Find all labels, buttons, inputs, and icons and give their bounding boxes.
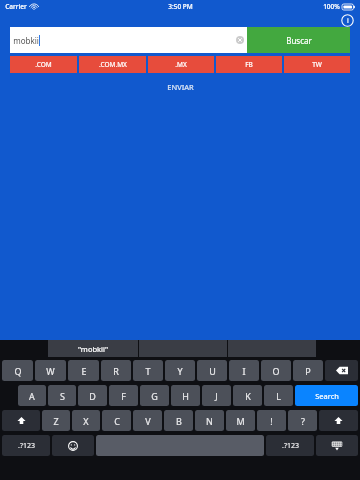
staticText: 100% — [323, 2, 340, 11]
button[interactable]: K — [233, 385, 262, 406]
button[interactable]: Info — [341, 14, 354, 27]
button[interactable]: X — [72, 410, 100, 431]
staticText: T — [145, 365, 151, 377]
staticText: R — [113, 365, 119, 377]
staticText: S — [60, 390, 65, 402]
staticText: Z — [53, 415, 59, 427]
button[interactable]: C — [102, 410, 131, 431]
staticText: E — [81, 365, 87, 377]
staticText: K — [245, 390, 251, 402]
button[interactable]: .?123 — [2, 435, 50, 456]
button[interactable]: L — [264, 385, 293, 406]
button[interactable]: S — [48, 385, 76, 406]
button[interactable]: Buscar — [247, 27, 350, 53]
staticText: I — [242, 365, 246, 377]
staticText: L — [276, 390, 281, 402]
staticText: Y — [177, 365, 183, 377]
staticText: mobkii — [13, 35, 39, 46]
button[interactable]: mobkii — [10, 27, 247, 53]
staticText: F — [121, 390, 126, 402]
staticText: H — [182, 390, 189, 402]
button[interactable]: I — [229, 360, 259, 381]
staticText: U — [209, 365, 216, 377]
button[interactable]: J — [202, 385, 231, 406]
button[interactable]: V — [133, 410, 162, 431]
button[interactable]: M — [226, 410, 255, 431]
button[interactable]: U — [197, 360, 227, 381]
staticText: M — [236, 415, 245, 427]
button[interactable]: Emoji — [52, 435, 94, 456]
staticText: .COM — [35, 60, 52, 69]
button[interactable]: G — [140, 385, 169, 406]
button[interactable]: A — [18, 385, 46, 406]
staticText: N — [206, 415, 213, 427]
staticText: V — [145, 415, 151, 427]
staticText: i — [347, 16, 349, 26]
staticText: W — [46, 365, 55, 377]
button[interactable]: W — [35, 360, 66, 381]
staticText: 3:50 PM — [168, 2, 193, 11]
button[interactable]: Shift — [2, 410, 40, 431]
staticText: TW — [312, 60, 322, 69]
staticText: Buscar — [286, 35, 312, 46]
button[interactable]: .?123 — [266, 435, 314, 456]
button[interactable]: Clear text — [236, 36, 244, 44]
button[interactable]: O — [261, 360, 291, 381]
button[interactable]: .COM — [10, 56, 77, 73]
staticText: J — [215, 390, 218, 402]
button[interactable]: Backspace — [325, 360, 358, 381]
staticText: .?123 — [282, 441, 299, 451]
staticText: Search — [315, 391, 339, 401]
button[interactable]: N — [195, 410, 224, 431]
button[interactable]: E — [68, 360, 99, 381]
staticText: FB — [245, 60, 253, 69]
button[interactable]: Shift — [319, 410, 358, 431]
staticText: G — [151, 390, 158, 402]
button[interactable]: .COM.MX — [79, 56, 146, 73]
button[interactable]: Y — [165, 360, 195, 381]
staticText: C — [114, 415, 120, 427]
button[interactable]: ! — [257, 410, 286, 431]
staticText: .?123 — [18, 441, 35, 451]
staticText: X — [83, 415, 89, 427]
button[interactable]: Q — [2, 360, 33, 381]
staticText: P — [305, 365, 311, 377]
staticText: Carrier — [5, 2, 27, 11]
staticText: O — [272, 365, 280, 377]
button[interactable]: T — [133, 360, 163, 381]
button[interactable]: B — [164, 410, 193, 431]
button[interactable]: R — [101, 360, 131, 381]
staticText: ! — [270, 415, 273, 427]
staticText: Q — [14, 365, 22, 377]
button[interactable]: D — [78, 385, 107, 406]
button[interactable]: F — [109, 385, 138, 406]
button[interactable]: Hide keyboard — [316, 435, 358, 456]
staticText: .COM.MX — [99, 60, 127, 69]
staticText: "mobkii" — [78, 344, 108, 354]
button[interactable]: FB — [216, 56, 282, 73]
staticText: .MX — [175, 60, 187, 69]
button[interactable]: Search — [295, 385, 358, 406]
button[interactable]: Z — [42, 410, 70, 431]
button[interactable]: H — [171, 385, 200, 406]
button[interactable]: "mobkii" — [48, 340, 138, 357]
button[interactable]: P — [293, 360, 323, 381]
staticText: ? — [301, 415, 305, 427]
staticText: ENVIAR — [167, 82, 194, 92]
button[interactable]: TW — [284, 56, 350, 73]
staticText: A — [29, 390, 35, 402]
staticText: D — [89, 390, 96, 402]
button[interactable]: .MX — [148, 56, 214, 73]
button[interactable]: ? — [288, 410, 317, 431]
staticText: B — [176, 415, 182, 427]
